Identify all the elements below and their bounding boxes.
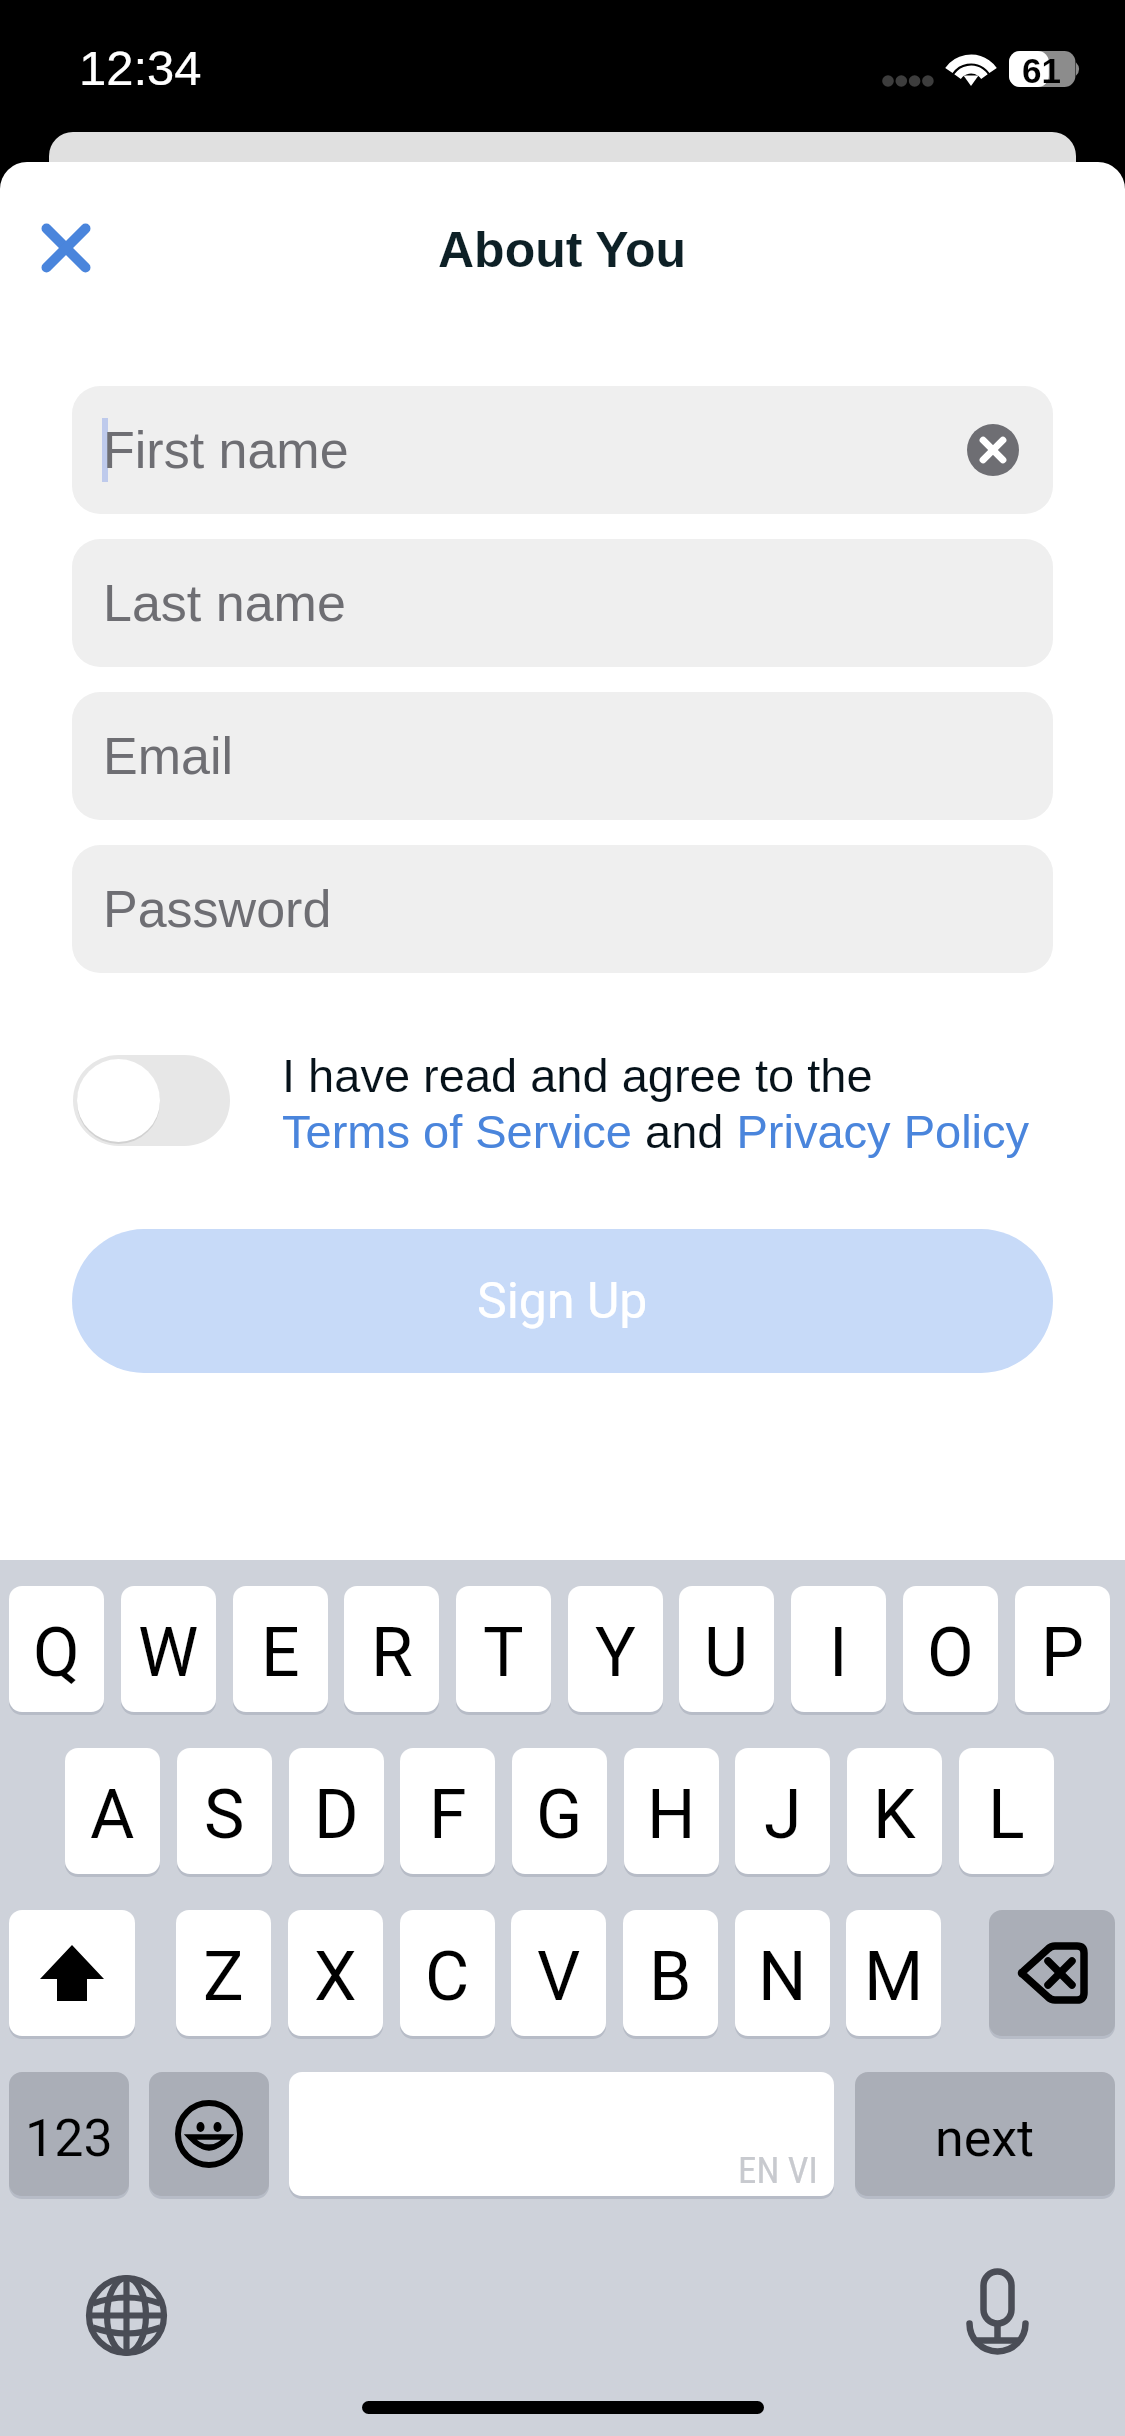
staticText: First name <box>103 421 349 479</box>
staticText: Last name <box>103 574 346 632</box>
staticText: K <box>873 1775 916 1855</box>
button[interactable]: T <box>456 1586 551 1712</box>
staticText: G <box>536 1775 583 1855</box>
staticText: Q <box>33 1613 80 1693</box>
staticText: I <box>829 1613 848 1693</box>
button[interactable]: G <box>512 1748 607 1874</box>
button[interactable]: Z <box>176 1910 271 2036</box>
staticText: A <box>90 1775 135 1855</box>
staticText: P <box>1041 1613 1084 1693</box>
button[interactable]: Q <box>9 1586 104 1712</box>
button[interactable]: Shift <box>9 1910 135 2036</box>
button[interactable]: V <box>511 1910 606 2036</box>
button[interactable]: First name <box>72 386 1053 514</box>
button[interactable]: Last name <box>72 539 1053 667</box>
button[interactable]: O <box>903 1586 998 1712</box>
button[interactable]: X <box>288 1910 383 2036</box>
button[interactable]: J <box>735 1748 830 1874</box>
button[interactable]: A <box>65 1748 160 1874</box>
button[interactable]: S <box>177 1748 272 1874</box>
button[interactable]: B <box>623 1910 718 2036</box>
staticText: O <box>927 1613 974 1693</box>
button[interactable]: next <box>855 2072 1115 2196</box>
staticText: 61 <box>1022 51 1061 87</box>
staticText: 123 <box>25 2108 113 2169</box>
staticText: B <box>649 1937 692 2017</box>
staticText: Password <box>103 880 332 938</box>
button[interactable]: I <box>791 1586 886 1712</box>
button[interactable]: Sign Up <box>72 1229 1053 1373</box>
button[interactable]: Clear text <box>963 420 1023 480</box>
button[interactable]: E <box>233 1586 328 1712</box>
staticText: U <box>704 1613 749 1693</box>
staticText: C <box>425 1937 470 2017</box>
button[interactable]: Backspace <box>989 1910 1115 2036</box>
button[interactable]: N <box>735 1910 830 2036</box>
button[interactable]: Change keyboard language <box>83 2272 170 2359</box>
staticText: X <box>314 1937 357 2017</box>
staticText: N <box>758 1937 807 2017</box>
staticText: E <box>261 1613 300 1693</box>
staticText: EN VI <box>738 2149 818 2192</box>
button[interactable]: H <box>624 1748 719 1874</box>
button[interactable]: Close <box>20 202 112 294</box>
button[interactable]: U <box>679 1586 774 1712</box>
staticText: Z <box>203 1937 244 2017</box>
button[interactable]: Dictate <box>954 2272 1041 2359</box>
button[interactable]: C <box>400 1910 495 2036</box>
staticText: F <box>429 1775 467 1855</box>
button[interactable]: 123 <box>9 2072 129 2196</box>
button[interactable]: W <box>121 1586 216 1712</box>
staticText: About You <box>438 222 687 278</box>
button[interactable]: R <box>344 1586 439 1712</box>
button[interactable]: K <box>847 1748 942 1874</box>
staticText: R <box>371 1613 413 1693</box>
button[interactable]: P <box>1015 1586 1110 1712</box>
button[interactable]: F <box>400 1748 495 1874</box>
staticText: next <box>935 2108 1035 2169</box>
staticText: L <box>988 1775 1025 1855</box>
staticText: S <box>204 1775 245 1855</box>
staticText: D <box>314 1775 359 1855</box>
button[interactable]: L <box>959 1748 1054 1874</box>
staticText: W <box>138 1613 199 1693</box>
button[interactable]: Space <box>289 2072 834 2196</box>
staticText: V <box>537 1937 581 2017</box>
button[interactable]: Y <box>568 1586 663 1712</box>
staticText: I have read and agree to the Terms of Se… <box>282 1049 1030 1158</box>
staticText: J <box>764 1775 802 1855</box>
button[interactable]: Password <box>72 845 1053 973</box>
button[interactable]: D <box>289 1748 384 1874</box>
button[interactable]: Agree to terms <box>73 1055 230 1146</box>
button[interactable]: M <box>846 1910 941 2036</box>
button[interactable]: Emoji <box>149 2072 269 2196</box>
staticText: Email <box>103 727 234 785</box>
button[interactable]: Email <box>72 692 1053 820</box>
staticText: T <box>483 1613 524 1693</box>
staticText: 12:34 <box>79 41 202 96</box>
staticText: Y <box>595 1613 636 1693</box>
staticText: Sign Up <box>477 1272 648 1331</box>
staticText: M <box>864 1937 924 2017</box>
staticText: H <box>647 1775 696 1855</box>
